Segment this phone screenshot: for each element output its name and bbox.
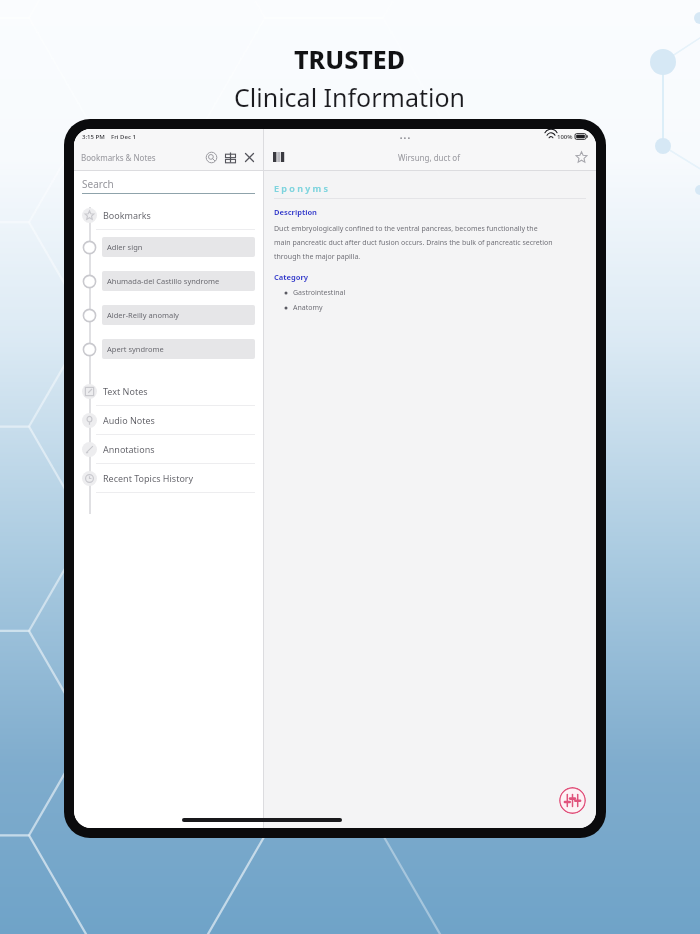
- button[interactable]: Text Notes: [74, 377, 263, 406]
- button[interactable]: Apert syndrome: [82, 332, 255, 366]
- button[interactable]: Filter: [224, 151, 237, 164]
- button[interactable]: Display settings: [559, 787, 586, 814]
- staticText: Ahumada-del Castillo syndrome: [107, 276, 220, 286]
- staticText: main pancreatic duct after duct fusion o…: [274, 238, 553, 248]
- staticText: Fri Dec 1: [111, 133, 136, 141]
- button[interactable]: Audio Notes: [74, 406, 263, 435]
- button[interactable]: Annotations: [74, 435, 263, 464]
- button[interactable]: Close: [243, 151, 256, 164]
- button[interactable]: Adler sign: [82, 230, 255, 264]
- button[interactable]: Layout: [272, 151, 284, 163]
- button[interactable]: Recent Topics History: [74, 464, 263, 493]
- staticText: Description: [274, 207, 317, 217]
- button[interactable]: Search: [205, 151, 218, 164]
- staticText: Adler sign: [107, 242, 143, 252]
- button[interactable]: Bookmark: [575, 151, 588, 164]
- staticText: Bookmarks & Notes: [81, 152, 156, 163]
- staticText: Text Notes: [103, 385, 148, 397]
- staticText: Annotations: [103, 443, 155, 455]
- staticText: Clinical Information: [234, 80, 466, 114]
- staticText: Recent Topics History: [103, 472, 194, 484]
- staticText: through the major papilla.: [274, 252, 361, 262]
- staticText: TRUSTED: [294, 42, 406, 76]
- button[interactable]: Ahumada-del Castillo syndrome: [82, 264, 255, 298]
- staticText: Duct embryologically confined to the ven…: [274, 224, 538, 234]
- staticText: Audio Notes: [103, 414, 155, 426]
- staticText: Search: [82, 177, 114, 191]
- staticText: • • •: [400, 134, 410, 139]
- staticText: 3:15 PM: [82, 133, 105, 141]
- staticText: E p o n y m s: [274, 182, 329, 194]
- staticText: Category: [274, 272, 309, 282]
- button[interactable]: Bookmarks: [74, 201, 263, 230]
- staticText: Apert syndrome: [107, 344, 164, 354]
- staticText: Bookmarks: [103, 209, 151, 221]
- button[interactable]: Alder-Reilly anomaly: [82, 298, 255, 332]
- staticText: 100%: [557, 133, 573, 141]
- staticText: Wirsung, duct of: [398, 152, 460, 163]
- staticText: Gastrointestinal: [293, 288, 346, 298]
- staticText: Anatomy: [293, 303, 323, 313]
- staticText: Alder-Reilly anomaly: [107, 310, 179, 320]
